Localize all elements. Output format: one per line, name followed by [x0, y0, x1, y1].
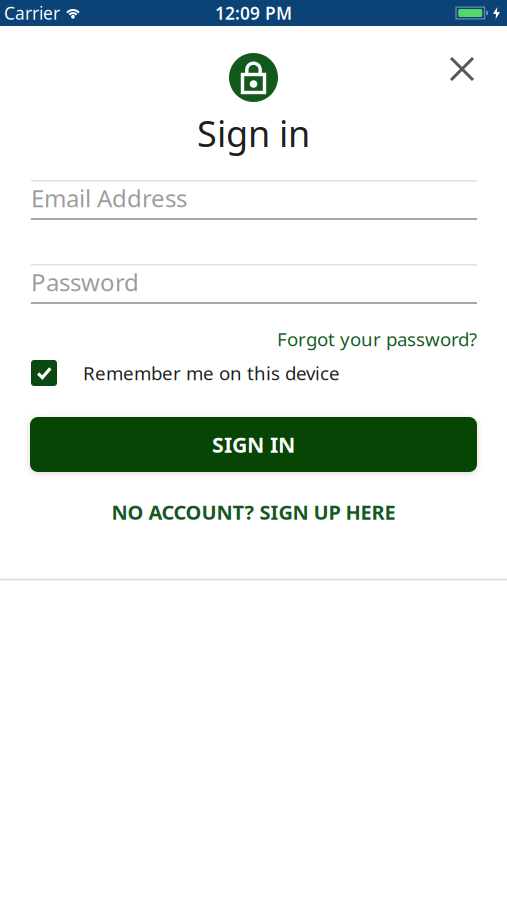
staticText: Sign in	[197, 109, 310, 157]
button[interactable]: SIGN IN	[0, 417, 507, 472]
button[interactable]: NO ACCOUNT? SIGN UP HERE	[111, 502, 395, 522]
staticText: Password	[31, 266, 139, 298]
staticText: NO ACCOUNT? SIGN UP HERE	[111, 499, 395, 525]
staticText: Email Address	[31, 182, 187, 214]
staticText: Forgot your password?	[277, 327, 477, 351]
staticText: Carrier	[4, 1, 60, 24]
staticText: 12:09 PM	[215, 1, 292, 24]
button[interactable]: Forgot your password?	[277, 329, 477, 349]
button[interactable]: Remember me on this device	[0, 360, 507, 386]
staticText: Remember me on this device	[83, 361, 340, 385]
staticText: SIGN IN	[212, 430, 295, 459]
button[interactable]: Close	[445, 52, 479, 86]
